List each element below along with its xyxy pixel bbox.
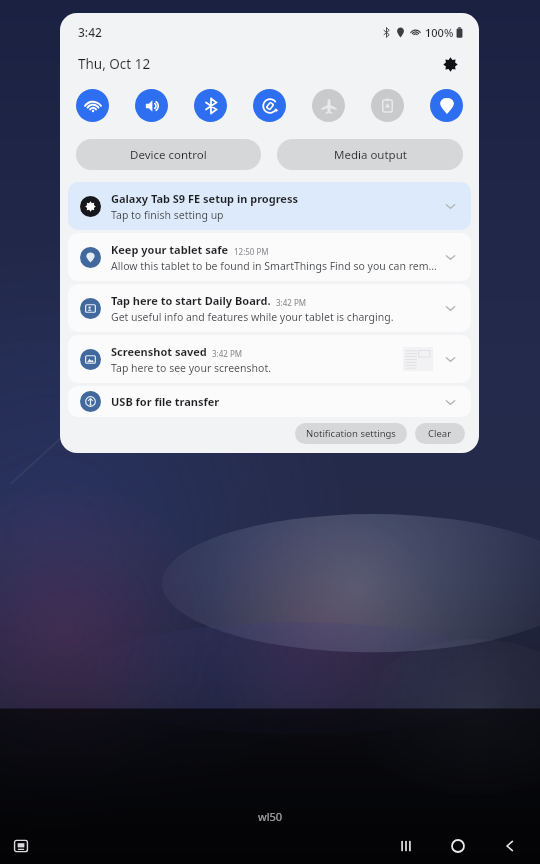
button[interactable]: Back [490, 828, 530, 864]
staticText: Tap here to start Daily Board. [111, 293, 271, 308]
staticText: 3:42 PM [276, 297, 307, 308]
button[interactable]: Notification settings [295, 423, 407, 444]
button[interactable]: Expand [439, 297, 461, 319]
staticText: Clear [428, 427, 452, 440]
button[interactable]: Recents [386, 828, 426, 864]
button[interactable]: Sound [135, 89, 168, 122]
staticText: Device control [130, 147, 207, 163]
staticText: Keep your tablet safe [111, 242, 229, 257]
button[interactable]: Bluetooth [194, 89, 227, 122]
button[interactable]: Expand [439, 195, 461, 217]
button[interactable]: Expand [439, 348, 461, 370]
staticText: 100% [425, 25, 454, 40]
button[interactable]: Home [438, 828, 478, 864]
staticText: USB for file transfer [111, 394, 220, 409]
button[interactable]: Tap here to start Daily Board. [68, 284, 471, 332]
button[interactable]: USB for file transfer [68, 386, 471, 417]
staticText: Galaxy Tab S9 FE setup in progress [111, 191, 298, 206]
staticText: Get useful info and features while your … [111, 310, 394, 324]
button[interactable]: Settings [435, 49, 465, 79]
button[interactable]: Auto rotate [253, 89, 286, 122]
button[interactable]: Power saving [371, 89, 404, 122]
staticText: Allow this tablet to be found in SmartTh… [111, 259, 439, 273]
button[interactable]: Screenshot saved [68, 335, 471, 383]
staticText: 12:50 PM [234, 246, 269, 257]
button[interactable]: Galaxy Tab S9 FE setup in progress [68, 182, 471, 230]
staticText: Media output [334, 147, 407, 163]
staticText: Notification settings [306, 427, 396, 440]
button[interactable]: Keep your tablet safe [68, 233, 471, 281]
staticText: 3:42 PM [212, 348, 243, 359]
button[interactable]: Keyboard [6, 831, 36, 861]
staticText: Tap here to see your screenshot. [111, 361, 272, 375]
button[interactable]: Device control [76, 139, 261, 170]
button[interactable]: Airplane mode [312, 89, 345, 122]
staticText: Thu, Oct 12 [78, 55, 151, 73]
button[interactable]: Wi-Fi [76, 89, 109, 122]
button[interactable]: Clear [415, 423, 465, 444]
button[interactable]: Expand [439, 246, 461, 268]
button[interactable]: Media output [277, 139, 463, 170]
staticText: Tap to finish setting up [111, 208, 224, 222]
staticText: Screenshot saved [111, 344, 207, 359]
staticText: 3:42 [78, 24, 102, 40]
staticText: wl50 [258, 809, 283, 824]
button[interactable]: Expand [439, 391, 461, 413]
button[interactable]: Location [430, 89, 463, 122]
